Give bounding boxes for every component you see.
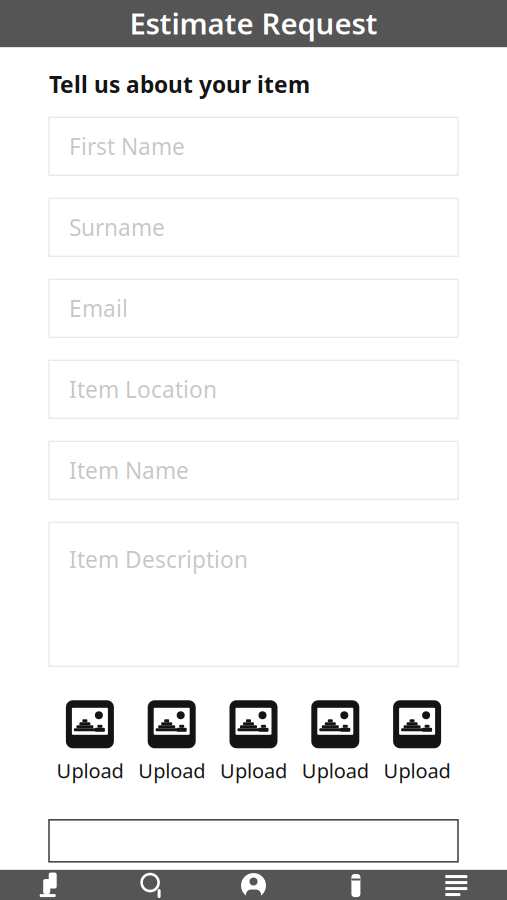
button[interactable]: Terms xyxy=(406,870,507,900)
staticText: Item Name xyxy=(69,455,189,485)
staticText: Estimate Request xyxy=(129,4,377,43)
button[interactable]: Email xyxy=(49,279,458,337)
staticText: Upload xyxy=(56,757,123,784)
staticText: Tell us about your item xyxy=(49,69,310,99)
staticText: First Name xyxy=(69,131,185,161)
button[interactable]: Auctions xyxy=(0,870,101,900)
staticText: Surname xyxy=(69,212,165,242)
button[interactable]: First Name xyxy=(49,117,458,175)
staticText: Item Description xyxy=(69,544,248,574)
staticText: Item Location xyxy=(69,374,217,404)
staticText: Email xyxy=(69,293,128,323)
button[interactable]: Upload xyxy=(213,700,294,784)
staticText: Upload xyxy=(220,757,287,784)
button[interactable]: Upload xyxy=(131,700,213,784)
button[interactable]: Item Description xyxy=(49,522,458,666)
button[interactable]: Upload xyxy=(376,700,458,784)
staticText: Upload xyxy=(302,757,369,784)
button[interactable] xyxy=(49,820,458,862)
button[interactable]: Item Name xyxy=(49,441,458,499)
button[interactable]: Account xyxy=(203,870,304,900)
button[interactable]: Upload xyxy=(49,700,131,784)
button[interactable]: Surname xyxy=(49,198,458,256)
button[interactable]: Item Location xyxy=(49,360,458,418)
button[interactable]: Upload xyxy=(294,700,376,784)
button[interactable]: Estimates xyxy=(304,870,406,900)
staticText: Upload xyxy=(138,757,205,784)
staticText: Upload xyxy=(384,757,451,784)
button[interactable]: Search xyxy=(101,870,203,900)
